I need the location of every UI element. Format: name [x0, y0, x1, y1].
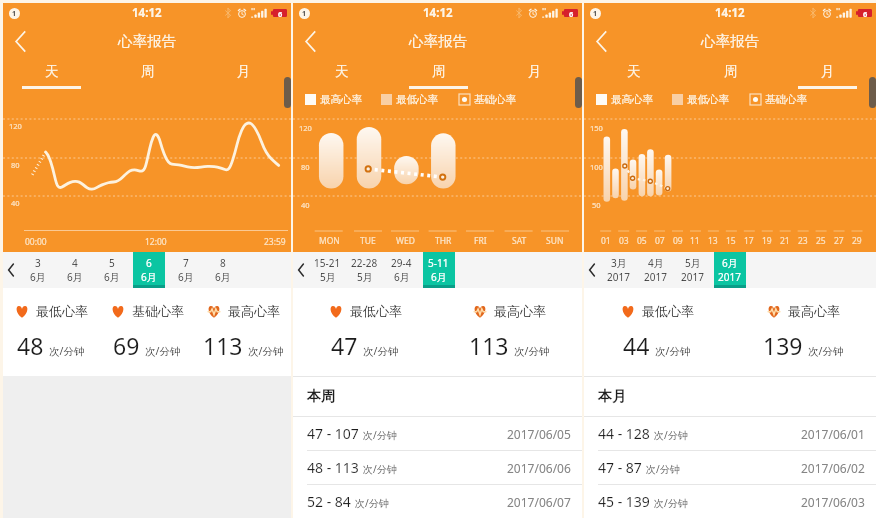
- staticText: THR: [435, 235, 452, 247]
- staticText: 113: [203, 330, 243, 361]
- staticText: 17: [744, 235, 754, 247]
- button[interactable]: 3月: [600, 252, 637, 288]
- staticText: 5: [109, 256, 115, 270]
- button[interactable]: 天: [3, 58, 99, 89]
- staticText: 25: [816, 235, 826, 247]
- button[interactable]: 22-28: [346, 252, 383, 288]
- button[interactable]: Previous: [293, 252, 309, 288]
- button[interactable]: 天: [293, 58, 390, 89]
- button[interactable]: 8: [204, 252, 241, 288]
- staticText: 6: [569, 9, 574, 17]
- staticText: 15: [726, 235, 736, 247]
- staticText: 00:00: [25, 236, 47, 248]
- staticText: 5月: [320, 270, 336, 284]
- staticText: 基础心率: [132, 303, 184, 319]
- staticText: 最低心率: [396, 93, 438, 106]
- button[interactable]: 48 - 113: [293, 451, 582, 484]
- button[interactable]: 3: [19, 252, 56, 288]
- button[interactable]: 45 - 139: [584, 485, 876, 518]
- button[interactable]: 6月: [711, 252, 748, 288]
- staticText: 6月: [431, 270, 447, 284]
- button[interactable]: 5月: [674, 252, 711, 288]
- staticText: 本周: [307, 388, 335, 406]
- button[interactable]: Previous: [584, 252, 600, 288]
- staticText: 47: [331, 330, 358, 361]
- staticText: 2017/06/02: [801, 460, 865, 476]
- staticText: 29-4: [391, 256, 412, 270]
- staticText: 天: [627, 63, 641, 80]
- staticText: 113: [469, 330, 509, 361]
- staticText: 11: [690, 235, 700, 247]
- staticText: 周: [141, 63, 155, 80]
- staticText: 15-21: [314, 256, 341, 270]
- staticText: 次/分钟: [248, 344, 284, 358]
- button[interactable]: Previous: [3, 252, 19, 288]
- staticText: 80: [11, 160, 20, 170]
- button[interactable]: 29-4: [383, 252, 420, 288]
- staticText: 69: [113, 330, 140, 361]
- staticText: 29: [852, 235, 862, 247]
- staticText: 23:59: [264, 236, 286, 248]
- staticText: 最高心率: [494, 303, 546, 319]
- staticText: 3月: [611, 256, 627, 270]
- staticText: MON: [319, 235, 340, 247]
- button[interactable]: 52 - 84: [293, 485, 582, 518]
- staticText: 次/分钟: [654, 496, 688, 510]
- staticText: 次/分钟: [355, 496, 389, 510]
- staticText: 6月: [141, 270, 157, 284]
- button[interactable]: 周: [682, 58, 779, 89]
- button[interactable]: 47 - 107: [293, 417, 582, 450]
- staticText: 5-11: [428, 256, 449, 270]
- staticText: 6: [278, 9, 283, 17]
- button[interactable]: 44 - 128: [584, 417, 876, 450]
- staticText: 6月: [178, 270, 194, 284]
- staticText: 天: [45, 63, 59, 80]
- staticText: 2017: [644, 270, 667, 284]
- staticText: 47 - 107: [307, 424, 359, 443]
- staticText: 05: [637, 235, 647, 247]
- button[interactable]: 15-21: [309, 252, 346, 288]
- button[interactable]: 47 - 87: [584, 451, 876, 484]
- button[interactable]: 周: [390, 58, 486, 89]
- staticText: 48: [17, 330, 44, 361]
- button[interactable]: 5-11: [420, 252, 457, 288]
- button[interactable]: 月: [486, 58, 582, 89]
- staticText: 基础心率: [474, 93, 516, 106]
- staticText: 5月: [685, 256, 701, 270]
- button[interactable]: Back: [3, 24, 37, 58]
- staticText: 周: [724, 63, 738, 80]
- staticText: 1: [12, 9, 17, 19]
- staticText: WED: [396, 235, 415, 247]
- staticText: 最低心率: [36, 303, 88, 319]
- staticText: 100: [590, 162, 603, 172]
- staticText: 2017/06/01: [801, 426, 865, 442]
- staticText: 心率报告: [409, 32, 467, 50]
- staticText: 2017/06/06: [507, 460, 571, 476]
- staticText: 最高心率: [320, 93, 362, 106]
- staticText: 27: [834, 235, 844, 247]
- button[interactable]: 4: [56, 252, 93, 288]
- button[interactable]: 天: [584, 58, 682, 89]
- staticText: SUN: [546, 235, 564, 247]
- staticText: 14:12: [423, 5, 453, 21]
- button[interactable]: 6: [130, 252, 167, 288]
- button[interactable]: 5: [93, 252, 130, 288]
- staticText: 基础心率: [765, 93, 807, 106]
- staticText: 2017/06/05: [507, 426, 571, 442]
- button[interactable]: 周: [99, 58, 195, 89]
- button[interactable]: 4月: [637, 252, 674, 288]
- staticText: 4: [72, 256, 78, 270]
- button[interactable]: 月: [195, 58, 291, 89]
- button[interactable]: Back: [584, 24, 618, 58]
- staticText: 150: [590, 123, 603, 133]
- staticText: 本月: [598, 388, 626, 406]
- staticText: 6: [863, 9, 868, 17]
- button[interactable]: 月: [779, 58, 876, 89]
- button[interactable]: Back: [293, 24, 327, 58]
- button[interactable]: 7: [167, 252, 204, 288]
- staticText: 6月: [104, 270, 120, 284]
- staticText: 月: [528, 63, 542, 80]
- staticText: 次/分钟: [514, 344, 550, 358]
- staticText: 139: [763, 330, 803, 361]
- staticText: 40: [301, 200, 310, 210]
